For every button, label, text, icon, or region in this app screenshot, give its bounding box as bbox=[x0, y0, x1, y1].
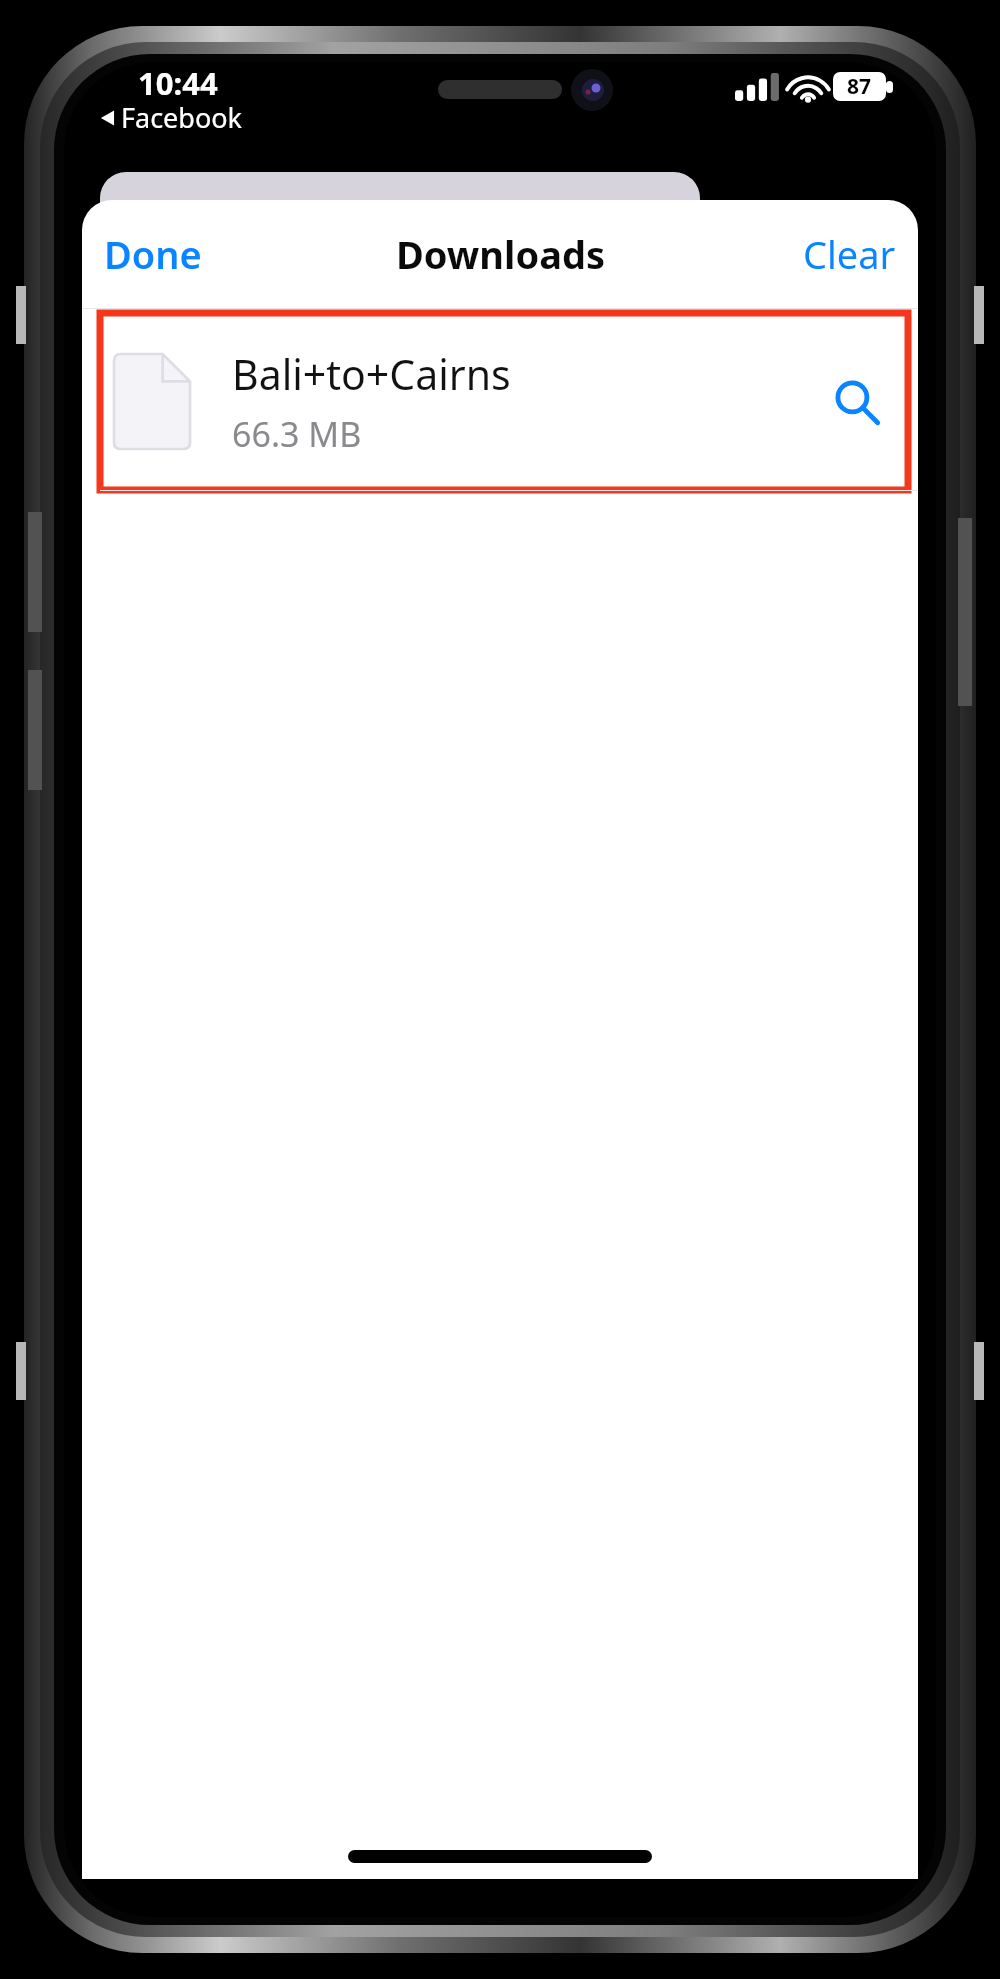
button[interactable]: Bali+to+Cairns bbox=[100, 313, 908, 490]
staticText: 10:44 bbox=[138, 62, 218, 104]
staticText: Downloads bbox=[396, 228, 605, 280]
staticText: 66.3 MB bbox=[232, 411, 362, 457]
staticText: Done bbox=[104, 228, 202, 280]
staticText: Clear bbox=[803, 228, 896, 280]
staticText: 87 bbox=[847, 72, 872, 101]
staticText: Bali+to+Cairns bbox=[232, 346, 511, 402]
button[interactable]: Done bbox=[90, 218, 216, 290]
button[interactable]: Search in file bbox=[820, 365, 894, 439]
staticText: Facebook bbox=[121, 99, 243, 136]
button[interactable]: Clear bbox=[789, 218, 910, 290]
